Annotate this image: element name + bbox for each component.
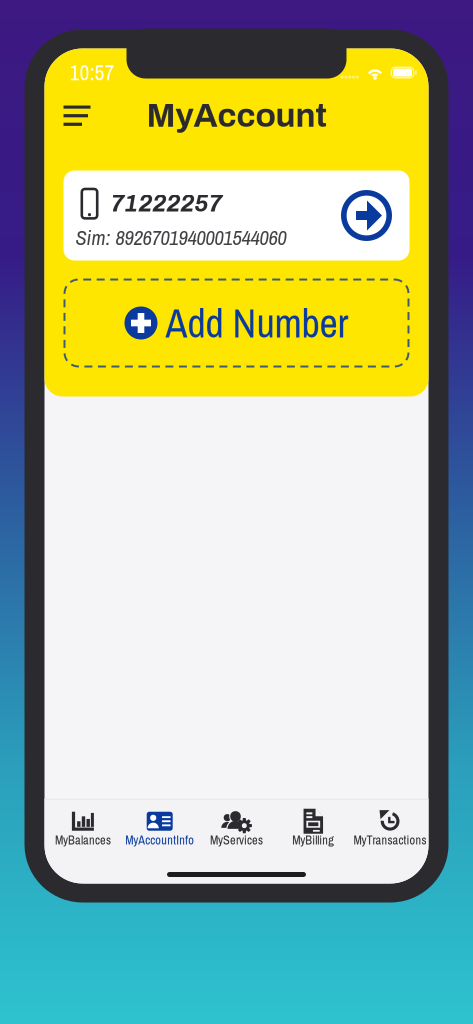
button[interactable]: 71222257	[63, 170, 409, 260]
staticText: MyAccountInfo	[125, 832, 194, 848]
staticText: MyBilling	[292, 832, 334, 848]
button[interactable]: Menu	[53, 96, 100, 134]
staticText: MyAccount	[146, 97, 326, 134]
staticText: Add Number	[165, 296, 348, 350]
staticText: MyTransactions	[354, 832, 427, 848]
button[interactable]: MyBalances	[44, 811, 121, 848]
button[interactable]: Add Number	[64, 279, 408, 366]
button[interactable]: MyBilling	[275, 811, 352, 848]
button[interactable]: MyAccountInfo	[121, 811, 198, 848]
staticText: 10:57	[69, 58, 114, 87]
staticText: MyBalances	[55, 832, 111, 848]
staticText: 71222257	[110, 191, 222, 216]
staticText: MyServices	[210, 832, 263, 848]
button[interactable]: MyServices	[198, 811, 275, 848]
button[interactable]: MyTransactions	[352, 811, 428, 848]
staticText: Sim: 8926701940001544060	[75, 224, 286, 251]
